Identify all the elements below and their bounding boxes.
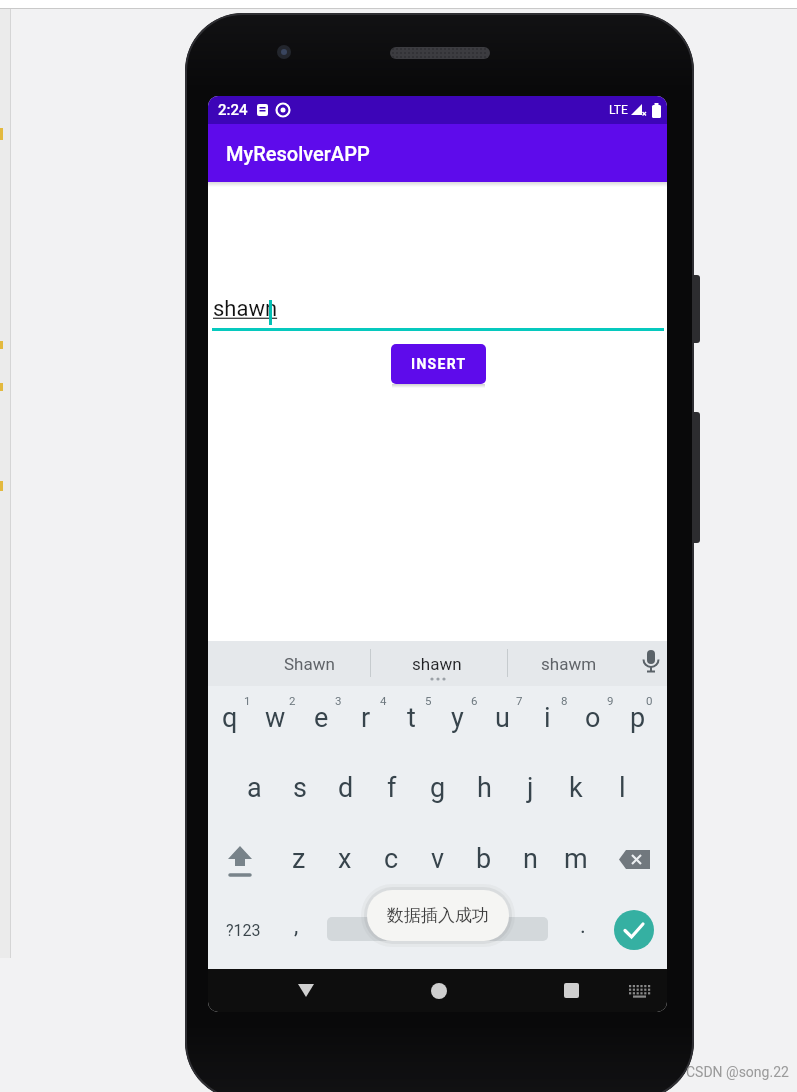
staticText: 1: [244, 694, 251, 707]
staticText: t: [407, 702, 416, 734]
staticText: o: [585, 702, 601, 734]
button[interactable]: e: [299, 699, 343, 737]
staticText: g: [430, 772, 446, 804]
staticText: shawn: [213, 296, 278, 322]
button[interactable]: [327, 917, 548, 941]
button[interactable]: v: [416, 840, 460, 878]
staticText: u: [495, 702, 510, 734]
staticText: c: [384, 843, 399, 875]
staticText: shawn: [412, 654, 462, 674]
button[interactable]: [614, 838, 658, 882]
button[interactable]: ,: [284, 906, 308, 946]
staticText: f: [387, 772, 397, 804]
staticText: x: [338, 843, 352, 875]
staticText: j: [527, 772, 534, 804]
staticText: k: [569, 772, 583, 804]
staticText: d: [338, 772, 354, 804]
staticText: y: [451, 702, 464, 734]
button[interactable]: Shawn: [249, 641, 369, 686]
button[interactable]: f: [370, 769, 414, 807]
button[interactable]: .: [571, 906, 595, 946]
staticText: 数据插入成功: [387, 905, 489, 926]
staticText: 5: [425, 694, 432, 707]
staticText: CSDN @song.22: [686, 1064, 789, 1080]
button[interactable]: y: [435, 699, 479, 737]
button[interactable]: shawn: [212, 292, 664, 328]
button[interactable]: m: [554, 840, 598, 878]
button[interactable]: [564, 983, 579, 998]
button[interactable]: z: [277, 840, 321, 878]
staticText: b: [476, 843, 492, 875]
staticText: Shawn: [284, 654, 335, 674]
staticText: m: [564, 843, 588, 875]
staticText: n: [523, 843, 538, 875]
button[interactable]: o: [571, 699, 615, 737]
staticText: h: [477, 772, 492, 804]
button[interactable]: n: [508, 840, 552, 878]
button[interactable]: ?123: [216, 910, 270, 950]
button[interactable]: t: [389, 699, 433, 737]
button[interactable]: i: [525, 699, 569, 737]
staticText: r: [361, 702, 371, 734]
button[interactable]: s: [278, 769, 322, 807]
staticText: s: [293, 772, 307, 804]
staticText: i: [544, 702, 551, 734]
staticText: 2: [289, 694, 296, 707]
button[interactable]: c: [369, 840, 413, 878]
button[interactable]: b: [462, 840, 506, 878]
staticText: ,: [294, 913, 299, 939]
button[interactable]: a: [232, 769, 276, 807]
staticText: MyResolverAPP: [226, 142, 370, 165]
button[interactable]: [218, 838, 262, 882]
button[interactable]: l: [600, 769, 644, 807]
button[interactable]: k: [554, 769, 598, 807]
button[interactable]: [614, 910, 654, 950]
button[interactable]: w: [253, 699, 297, 737]
staticText: shawm: [541, 654, 597, 674]
button[interactable]: g: [416, 769, 460, 807]
button[interactable]: shawm: [514, 641, 624, 686]
staticText: LTE: [609, 103, 628, 117]
staticText: 7: [516, 694, 523, 707]
button[interactable]: INSERT: [391, 344, 486, 384]
button[interactable]: [638, 647, 664, 681]
staticText: 9: [607, 694, 614, 707]
staticText: p: [630, 702, 646, 734]
button[interactable]: d: [324, 769, 368, 807]
staticText: 6: [471, 694, 478, 707]
button[interactable]: shawn: [377, 641, 497, 686]
staticText: 0: [646, 694, 653, 707]
staticText: 2:24: [218, 101, 248, 119]
staticText: q: [222, 702, 238, 734]
button[interactable]: q: [208, 699, 252, 737]
staticText: 8: [561, 694, 568, 707]
button[interactable]: [431, 983, 447, 999]
staticText: ?123: [226, 921, 261, 940]
staticText: INSERT: [411, 356, 467, 372]
button[interactable]: j: [508, 769, 552, 807]
button[interactable]: h: [462, 769, 506, 807]
staticText: 4: [380, 694, 387, 707]
button[interactable]: p: [616, 699, 660, 737]
button[interactable]: [297, 982, 315, 999]
button[interactable]: [628, 984, 652, 999]
button[interactable]: u: [480, 699, 524, 737]
staticText: v: [431, 843, 445, 875]
staticText: e: [314, 702, 329, 734]
staticText: z: [292, 843, 306, 875]
staticText: .: [580, 913, 586, 939]
staticText: l: [619, 772, 626, 804]
staticText: a: [247, 772, 262, 804]
button[interactable]: x: [323, 840, 367, 878]
staticText: 3: [335, 694, 342, 707]
staticText: w: [265, 702, 286, 734]
button[interactable]: r: [344, 699, 388, 737]
